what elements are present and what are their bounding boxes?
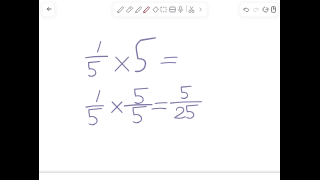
- button[interactable]: Pages: [269, 3, 278, 15]
- button[interactable]: Redo: [251, 3, 260, 15]
- button[interactable]: Select: [159, 3, 168, 15]
- button[interactable]: Pen: [116, 3, 125, 15]
- button[interactable]: Eraser: [151, 3, 160, 15]
- button[interactable]: Marker: [142, 3, 151, 15]
- button[interactable]: Highlighter: [125, 3, 134, 15]
- button[interactable]: Shapes: [168, 3, 177, 15]
- button[interactable]: More: [196, 3, 205, 15]
- button[interactable]: View: [261, 3, 270, 15]
- button[interactable]: Undo: [242, 3, 251, 15]
- button[interactable]: Lasso: [187, 3, 196, 15]
- button[interactable]: Microphone: [176, 3, 185, 15]
- button[interactable]: Pencil: [134, 3, 143, 15]
- button[interactable]: Back: [43, 3, 54, 15]
